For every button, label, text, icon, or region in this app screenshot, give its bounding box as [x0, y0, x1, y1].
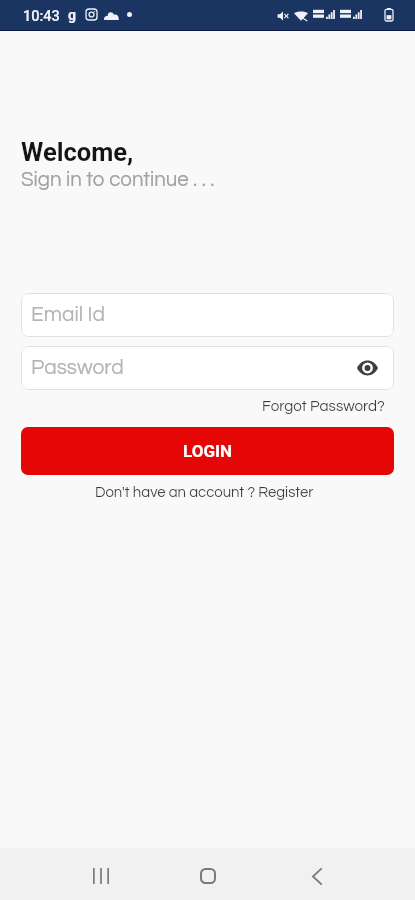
button[interactable]: Show password: [353, 354, 381, 382]
staticText: Sign in to continue . . .: [21, 169, 215, 190]
staticText: Don't have an account ? Register: [95, 485, 314, 500]
staticText: LOGIN: [183, 441, 232, 461]
button[interactable]: Recent apps: [73, 850, 129, 900]
staticText: Password: [31, 357, 124, 379]
button[interactable]: Don't have an account ? Register: [89, 483, 320, 502]
button[interactable]: Back: [289, 850, 345, 900]
button[interactable]: Forgot Password?: [252, 397, 415, 417]
button[interactable]: Password: [21, 346, 394, 390]
staticText: g: [68, 7, 76, 23]
staticText: Welcome,: [21, 137, 134, 167]
button[interactable]: Email Id: [21, 293, 394, 337]
button[interactable]: Home: [180, 850, 236, 900]
staticText: 10:43: [23, 8, 60, 25]
button[interactable]: LOGIN: [21, 427, 394, 475]
staticText: Email Id: [31, 304, 106, 326]
staticText: Forgot Password?: [262, 399, 385, 415]
